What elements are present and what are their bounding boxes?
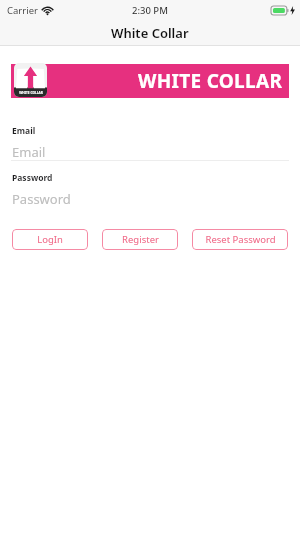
staticText: Password [12, 172, 53, 184]
button[interactable]: Email [12, 143, 288, 159]
staticText: Carrier [7, 4, 38, 17]
staticText: WHITE COLLAR [138, 68, 283, 94]
staticText: White Collar [111, 24, 189, 42]
button[interactable]: Password [12, 190, 288, 206]
button[interactable]: Reset Password [192, 229, 288, 250]
staticText: LogIn [37, 233, 63, 246]
button[interactable]: Register [102, 229, 178, 250]
staticText: Password [12, 190, 71, 206]
button[interactable]: LogIn [12, 229, 88, 250]
staticText: 2:30 PM [132, 4, 168, 17]
staticText: Reset Password [205, 233, 276, 246]
staticText: Register [122, 233, 159, 246]
staticText: Email [12, 125, 36, 137]
staticText: WHITE COLLAR [19, 91, 43, 95]
staticText: Email [12, 143, 46, 159]
